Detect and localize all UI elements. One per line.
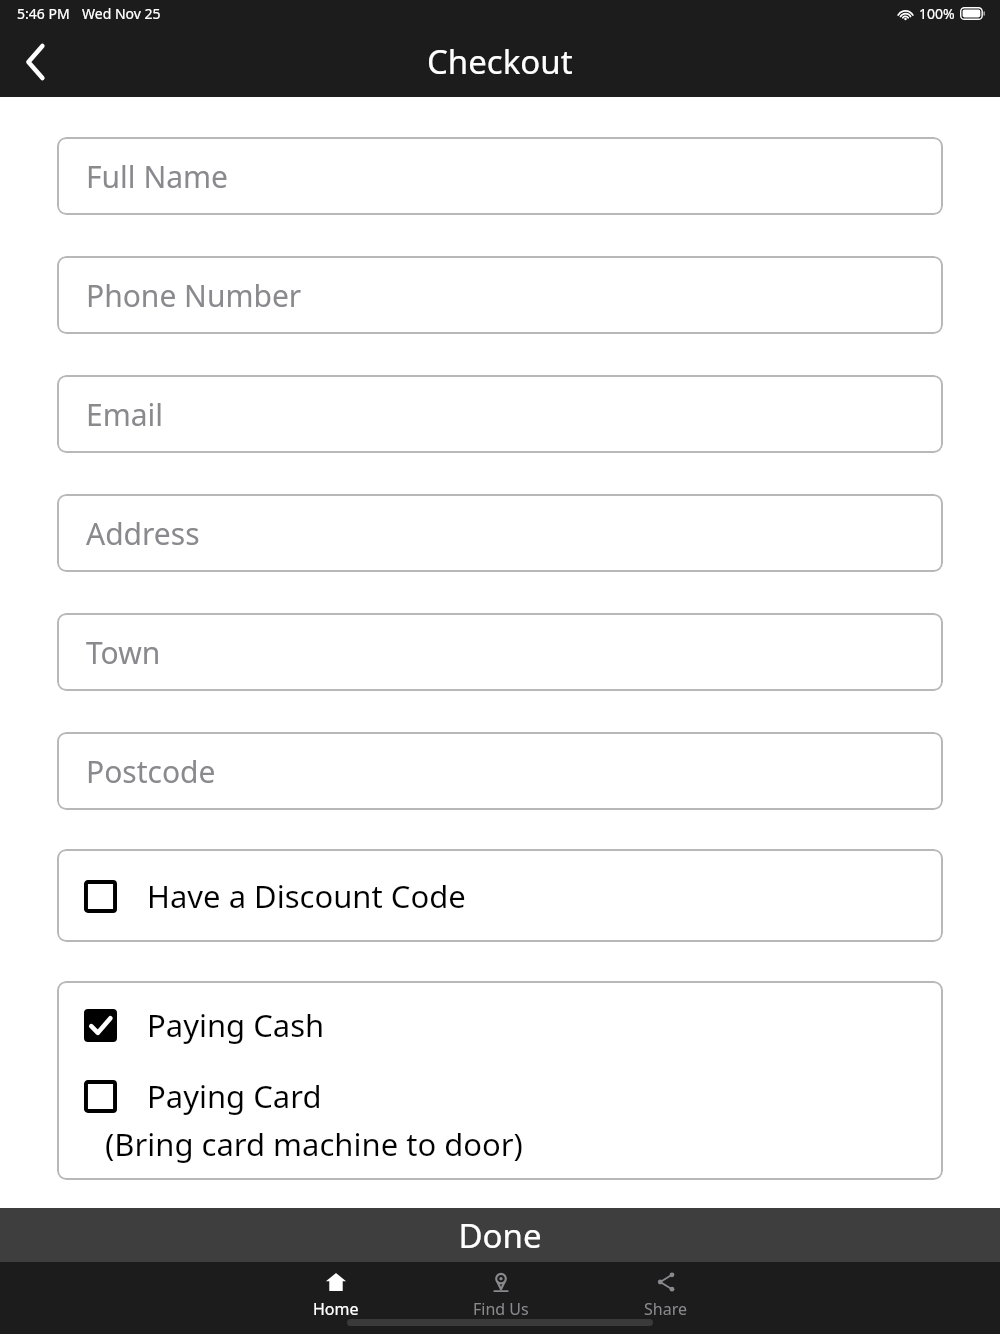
staticText: Done xyxy=(458,1213,542,1258)
button[interactable]: Paying Card xyxy=(57,1075,943,1117)
button[interactable]: Town xyxy=(57,613,943,691)
staticText: Address xyxy=(86,513,200,554)
button[interactable]: Postcode xyxy=(57,732,943,810)
staticText: Find Us xyxy=(473,1298,529,1320)
button[interactable]: Phone Number xyxy=(57,256,943,334)
staticText: Home xyxy=(313,1298,359,1320)
button[interactable]: Address xyxy=(57,494,943,572)
button[interactable]: Paying Cash xyxy=(57,1004,943,1046)
staticText: 5:46 PM xyxy=(17,4,70,23)
staticText: Share xyxy=(644,1298,687,1320)
staticText: Phone Number xyxy=(86,275,302,316)
staticText: (Bring card machine to door) xyxy=(105,1123,943,1165)
button[interactable]: Home xyxy=(283,1270,388,1320)
button[interactable]: Done xyxy=(0,1208,1000,1262)
staticText: 100% xyxy=(919,4,955,23)
button[interactable]: Email xyxy=(57,375,943,453)
button[interactable]: Back xyxy=(8,34,64,90)
button[interactable]: Find Us xyxy=(448,1270,553,1320)
staticText: Paying Cash xyxy=(147,1004,325,1046)
button[interactable]: Full Name xyxy=(57,137,943,215)
staticText: Checkout xyxy=(427,39,573,84)
staticText: Wed Nov 25 xyxy=(82,4,161,23)
button[interactable]: Share xyxy=(613,1270,718,1320)
staticText: Have a Discount Code xyxy=(147,875,466,917)
staticText: Postcode xyxy=(86,751,216,792)
staticText: Paying Card xyxy=(147,1075,322,1117)
staticText: Town xyxy=(86,632,161,673)
button[interactable]: Have a Discount Code xyxy=(57,849,943,942)
staticText: Full Name xyxy=(86,156,228,197)
staticText: Email xyxy=(86,394,164,435)
